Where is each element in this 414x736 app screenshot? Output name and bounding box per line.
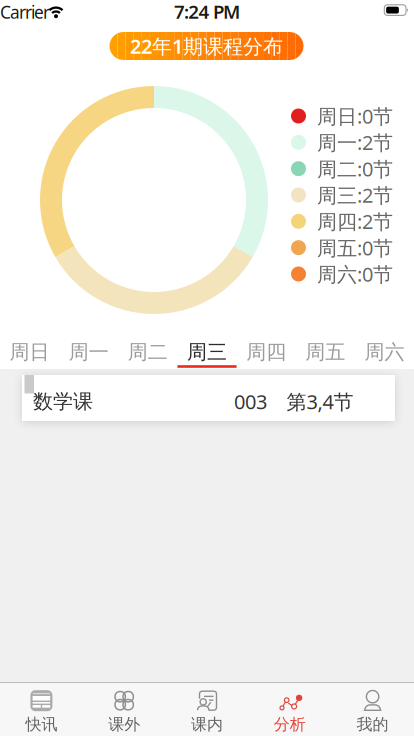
button[interactable]: 周一: [59, 339, 118, 369]
button[interactable]: 周六: [355, 339, 414, 369]
staticText: 数学课: [33, 389, 93, 414]
staticText: 课内: [191, 715, 223, 734]
staticText: 课外: [108, 715, 140, 734]
button[interactable]: 课内: [166, 687, 248, 736]
staticText: 周三: [187, 340, 227, 364]
button[interactable]: 数学课: [22, 375, 395, 421]
button[interactable]: 周五: [296, 339, 355, 369]
staticText: 周四:2节: [317, 208, 393, 235]
button[interactable]: 周二: [118, 339, 177, 369]
staticText: 周一:2节: [317, 129, 393, 156]
staticText: 周二: [128, 340, 168, 364]
staticText: 快讯: [25, 715, 57, 734]
staticText: 周六: [364, 340, 404, 364]
staticText: Carrier: [0, 0, 50, 23]
staticText: 周一: [69, 340, 109, 364]
staticText: 周日: [10, 340, 50, 364]
button[interactable]: 课外: [83, 687, 166, 736]
staticText: 我的: [357, 715, 389, 734]
button[interactable]: 快讯: [0, 687, 83, 736]
button[interactable]: 周三: [177, 339, 236, 369]
staticText: 周三:2节: [317, 182, 393, 208]
staticText: 周五:0节: [317, 234, 393, 261]
staticText: 003: [234, 388, 267, 415]
button[interactable]: 22年1期课程分布: [109, 32, 303, 60]
staticText: 周二:0节: [317, 155, 393, 182]
staticText: 分析: [274, 715, 306, 734]
button[interactable]: 周日: [0, 339, 59, 369]
button[interactable]: 我的: [331, 687, 414, 736]
button[interactable]: 周四: [237, 339, 296, 369]
staticText: 周五: [305, 340, 345, 364]
staticText: 7:24 PM: [174, 0, 240, 24]
staticText: 22年1期课程分布: [130, 33, 283, 59]
staticText: 周四: [246, 340, 286, 364]
staticText: 第3,4节: [286, 388, 353, 415]
staticText: 周六:0节: [317, 261, 393, 287]
button[interactable]: 分析: [248, 687, 331, 736]
staticText: 周日:0节: [317, 103, 393, 129]
